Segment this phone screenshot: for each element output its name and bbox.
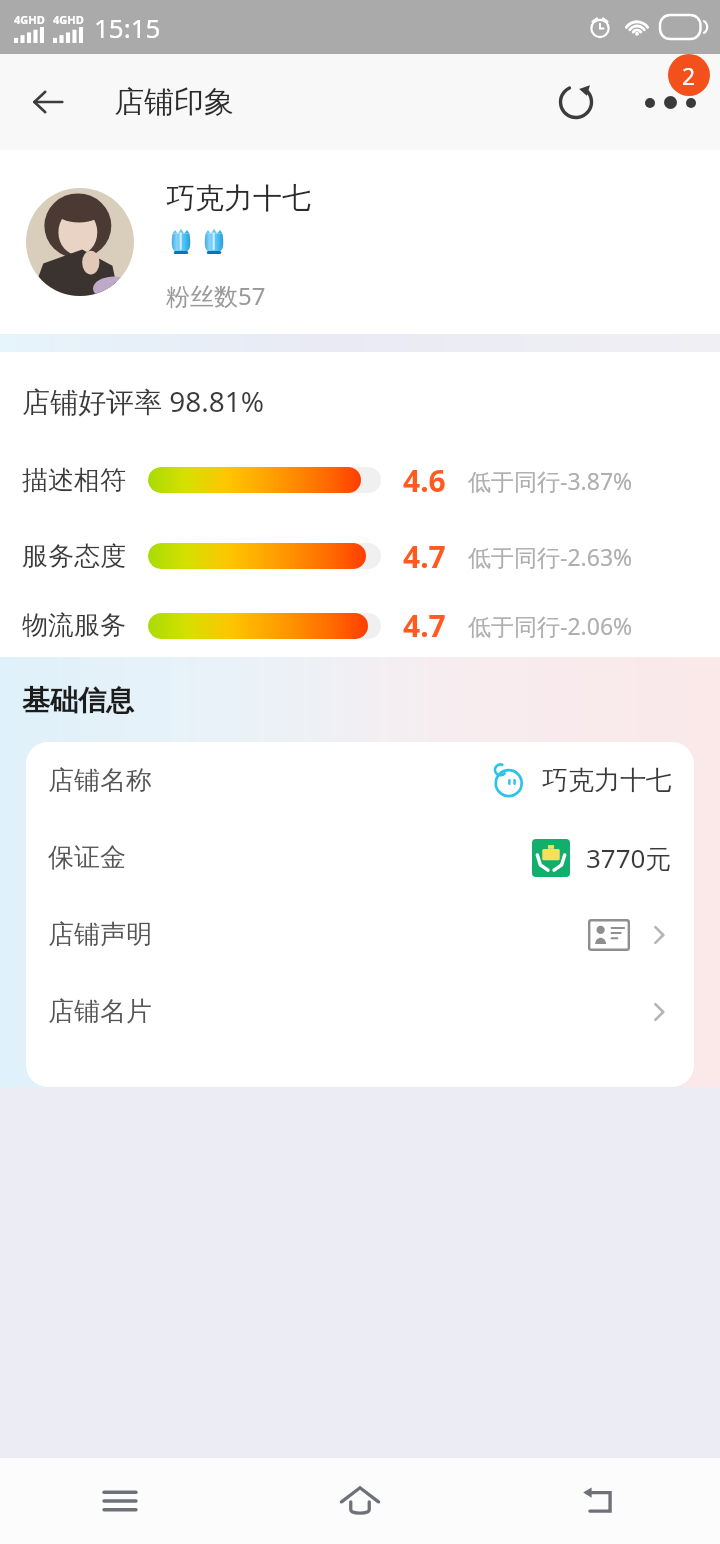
button[interactable]: Refresh [544,70,608,134]
button[interactable]: Home [240,1458,480,1544]
button[interactable]: 巧克力十七 [0,150,720,334]
staticText: 低于同行-2.06% [468,610,633,641]
staticText: 4.7 [403,605,446,646]
staticText: 4GHD [53,12,84,27]
staticText: 4.6 [403,460,446,501]
staticText: 店铺名片 [48,995,152,1028]
staticText: 物流服务 [22,609,126,642]
staticText: 低于同行-3.87% [468,465,633,496]
button[interactable]: More options, 2 notifications [634,66,706,138]
button[interactable]: Back [480,1458,720,1544]
button[interactable]: 描述相符 [0,442,720,518]
staticText: 巧克力十七 [542,764,672,797]
staticText: 粉丝数57 [166,279,266,312]
staticText: 4.7 [403,536,446,577]
button[interactable]: 物流服务 [0,594,720,657]
button[interactable]: Back [18,72,78,132]
staticText: 2 [682,60,696,91]
button[interactable]: 服务态度 [0,518,720,594]
button[interactable]: Recent apps [0,1458,240,1544]
staticText: 4GHD [14,12,45,27]
staticText: 店铺印象 [114,83,234,121]
staticText: 保证金 [48,841,126,874]
staticText: 巧克力十七 [166,180,311,217]
staticText: 描述相符 [22,464,126,497]
button[interactable]: 店铺声明 [26,896,694,973]
staticText: 3770元 [586,840,672,876]
button[interactable]: 店铺名片 [26,973,694,1050]
staticText: 店铺名称 [48,764,152,797]
staticText: 基础信息 [22,683,134,718]
staticText: 服务态度 [22,540,126,573]
button[interactable]: 店铺名称 [26,742,694,819]
staticText: 店铺声明 [48,918,152,951]
staticText: 店铺好评率 98.81% [22,382,265,420]
button[interactable]: 保证金 [26,819,694,896]
staticText: 15:15 [94,10,161,45]
staticText: 低于同行-2.63% [468,541,633,572]
